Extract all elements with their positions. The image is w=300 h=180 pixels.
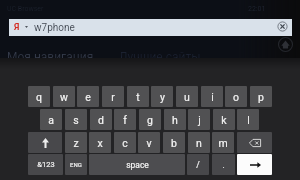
staticText: e <box>85 91 91 103</box>
staticText: g <box>147 114 153 126</box>
staticText: / <box>196 160 200 170</box>
button[interactable]: b <box>163 132 185 153</box>
staticText: Я <box>14 22 20 33</box>
button[interactable]: u <box>176 86 198 107</box>
staticText: UC Browser <box>7 5 44 13</box>
staticText: m <box>218 137 228 149</box>
button[interactable]: e <box>77 86 99 107</box>
staticText: v <box>146 137 152 149</box>
staticText: w7phone <box>34 22 75 34</box>
button[interactable]: v <box>138 132 160 153</box>
button[interactable]: Моя навигация <box>7 50 94 64</box>
staticText: s <box>73 114 79 126</box>
button[interactable]: . <box>212 154 235 175</box>
button[interactable]: c <box>114 132 136 153</box>
staticText: k <box>221 114 227 126</box>
staticText: d <box>98 114 104 126</box>
button[interactable]: g <box>139 109 161 130</box>
button[interactable]: p <box>250 86 272 107</box>
button[interactable]: / <box>187 154 209 175</box>
staticText: h <box>172 114 178 126</box>
staticText: c <box>122 137 128 149</box>
staticText: ENG <box>70 161 82 168</box>
staticText: a <box>48 114 54 126</box>
button[interactable]: k <box>213 109 235 130</box>
button[interactable]: n <box>188 132 210 153</box>
button[interactable]: t <box>127 86 149 107</box>
staticText: q <box>36 91 42 103</box>
button[interactable]: i <box>201 86 223 107</box>
button[interactable]: j <box>188 109 210 130</box>
staticText: x <box>97 137 103 149</box>
staticText: . <box>222 160 225 170</box>
staticText: l <box>247 114 250 126</box>
button[interactable]: h <box>164 109 186 130</box>
button[interactable]: o <box>225 86 247 107</box>
staticText: 22:01 <box>248 5 266 13</box>
staticText: f <box>123 114 127 126</box>
button[interactable]: d <box>90 109 112 130</box>
button[interactable]: Shift <box>28 132 62 153</box>
button[interactable]: Clear <box>274 19 291 36</box>
button[interactable]: x <box>89 132 111 153</box>
button[interactable]: &123 <box>28 154 63 175</box>
staticText: space <box>126 160 149 170</box>
button[interactable]: r <box>102 86 124 107</box>
button[interactable]: m <box>212 132 234 153</box>
staticText: r <box>111 91 115 103</box>
staticText: y <box>160 91 165 103</box>
button[interactable]: y <box>151 86 173 107</box>
button[interactable]: ENG <box>65 154 87 175</box>
button[interactable]: w <box>53 86 75 107</box>
staticText: j <box>198 114 201 126</box>
button[interactable]: Enter <box>237 154 272 175</box>
staticText: t <box>136 91 140 103</box>
staticText: w <box>60 91 68 103</box>
button[interactable]: z <box>65 132 87 153</box>
staticText: n <box>196 137 202 149</box>
button[interactable]: f <box>114 109 136 130</box>
button[interactable]: Лучшие сайты <box>119 50 201 64</box>
button[interactable]: l <box>237 109 259 130</box>
staticText: u <box>184 91 190 103</box>
staticText: b <box>171 137 177 149</box>
button[interactable]: Я <box>9 19 292 36</box>
button[interactable]: a <box>40 109 62 130</box>
staticText: &123 <box>37 160 55 169</box>
button[interactable]: Backspace <box>237 132 272 153</box>
button[interactable]: space <box>89 154 185 175</box>
staticText: o <box>233 91 239 103</box>
button[interactable]: s <box>65 109 87 130</box>
staticText: z <box>73 137 79 149</box>
button[interactable]: q <box>28 86 50 107</box>
button[interactable]: Home <box>278 37 293 52</box>
staticText: p <box>258 91 264 103</box>
staticText: i <box>211 91 214 103</box>
